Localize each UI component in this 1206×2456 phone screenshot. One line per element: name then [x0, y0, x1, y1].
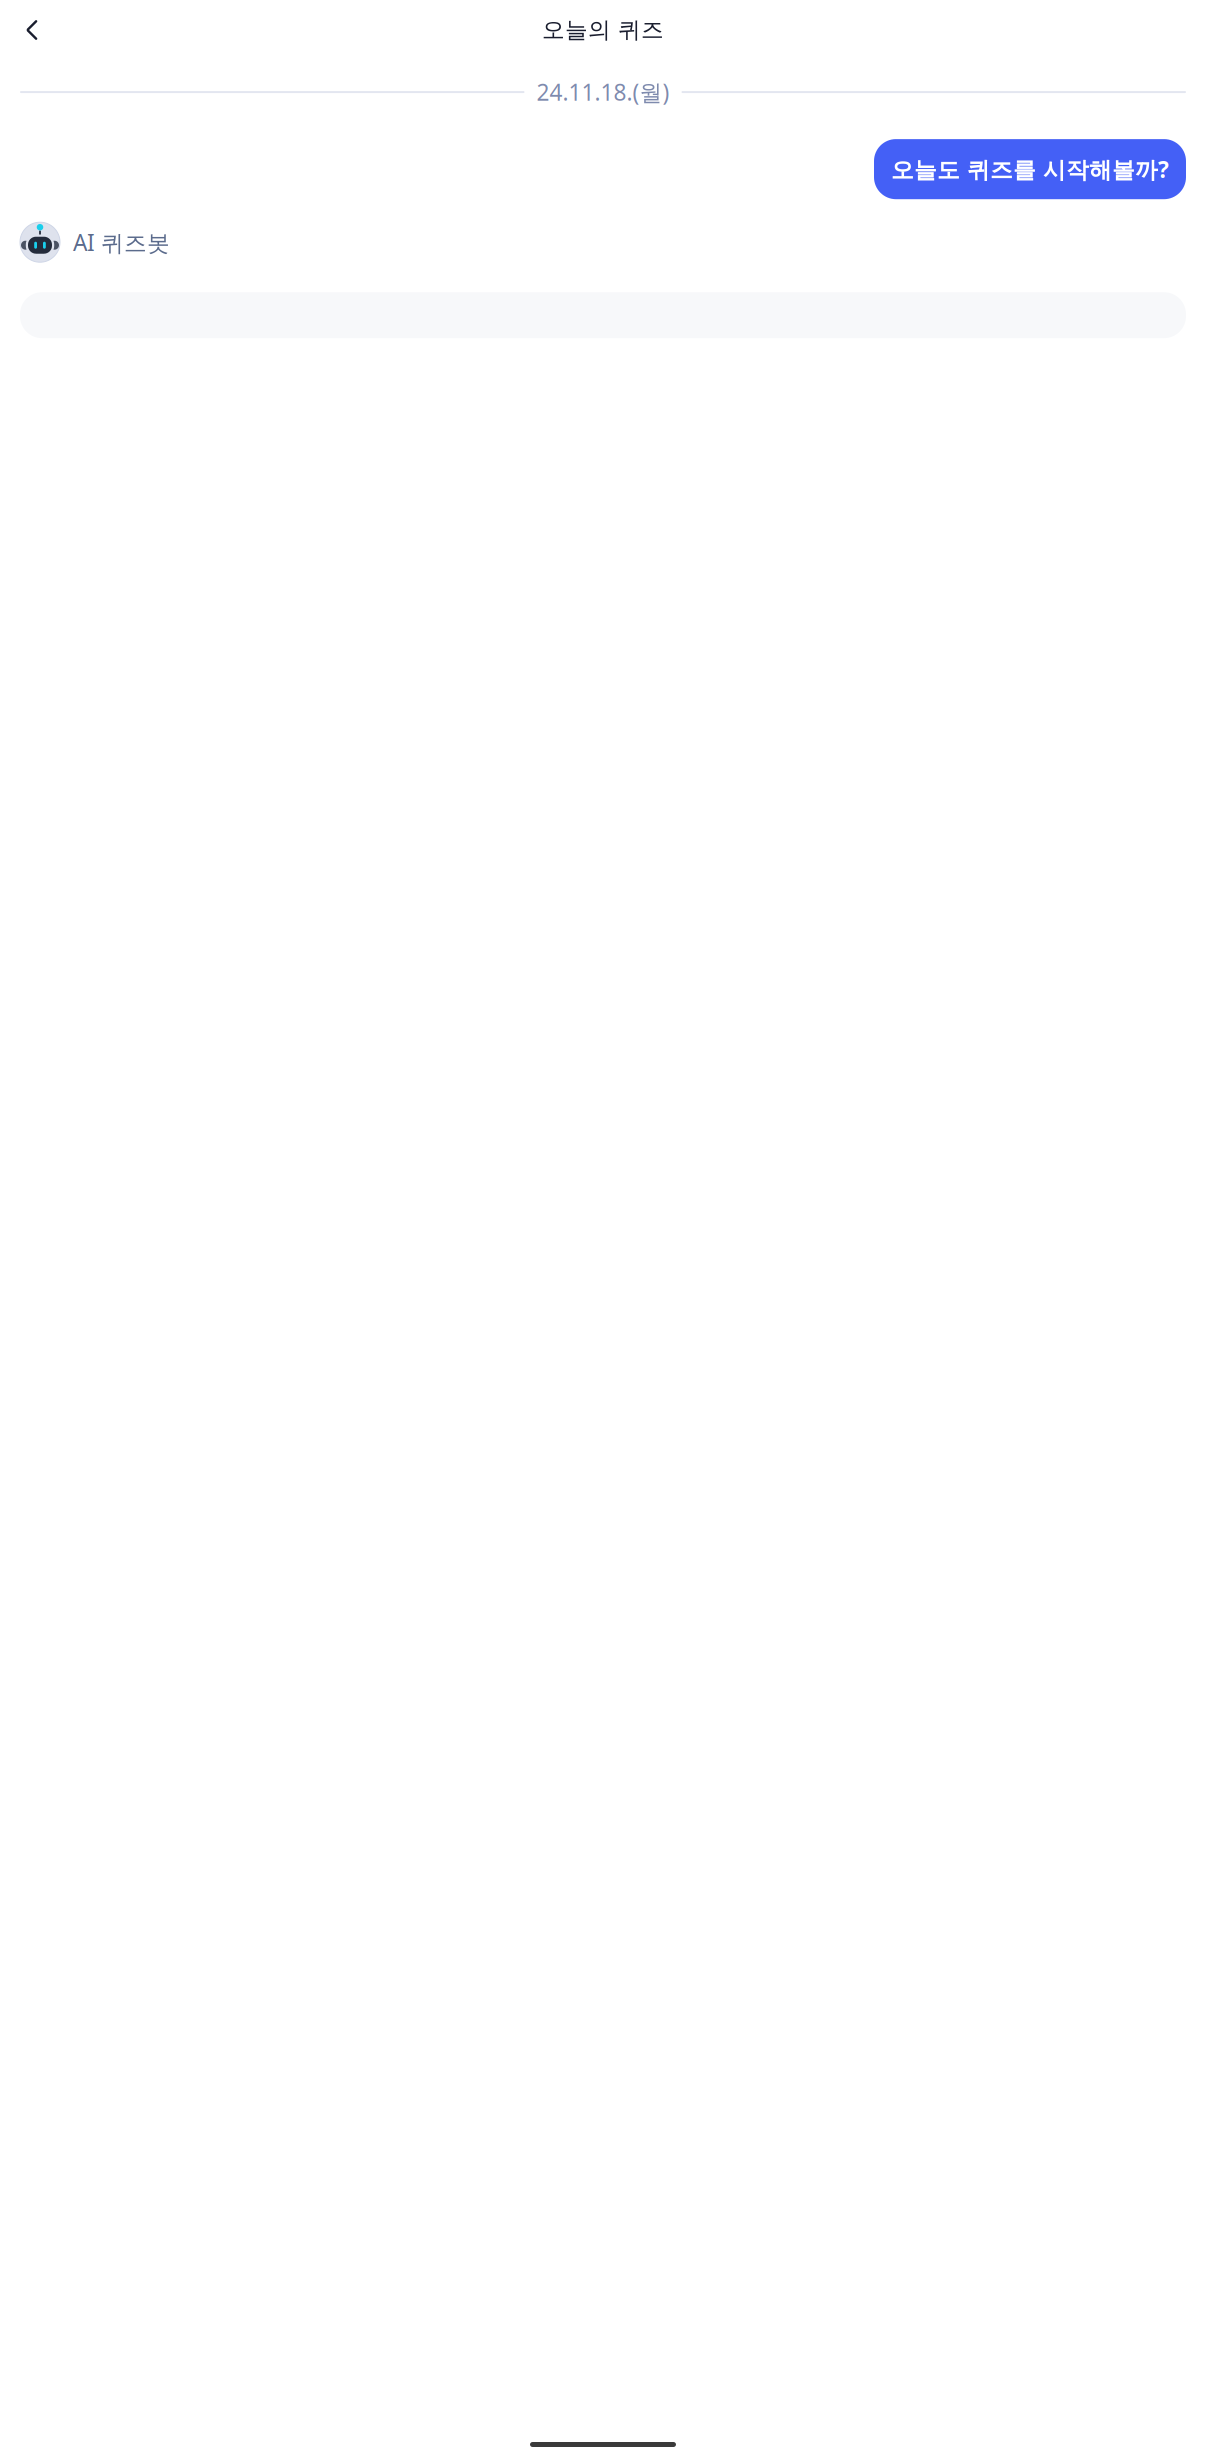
staticText: AI 퀴즈봇 [73, 227, 170, 257]
staticText: 오늘도 퀴즈를 시작해볼까? [891, 154, 1169, 184]
button[interactable]: Back [10, 8, 54, 52]
staticText: 오늘의 퀴즈 [542, 16, 664, 44]
staticText: 24.11.18.(월) [536, 77, 669, 107]
